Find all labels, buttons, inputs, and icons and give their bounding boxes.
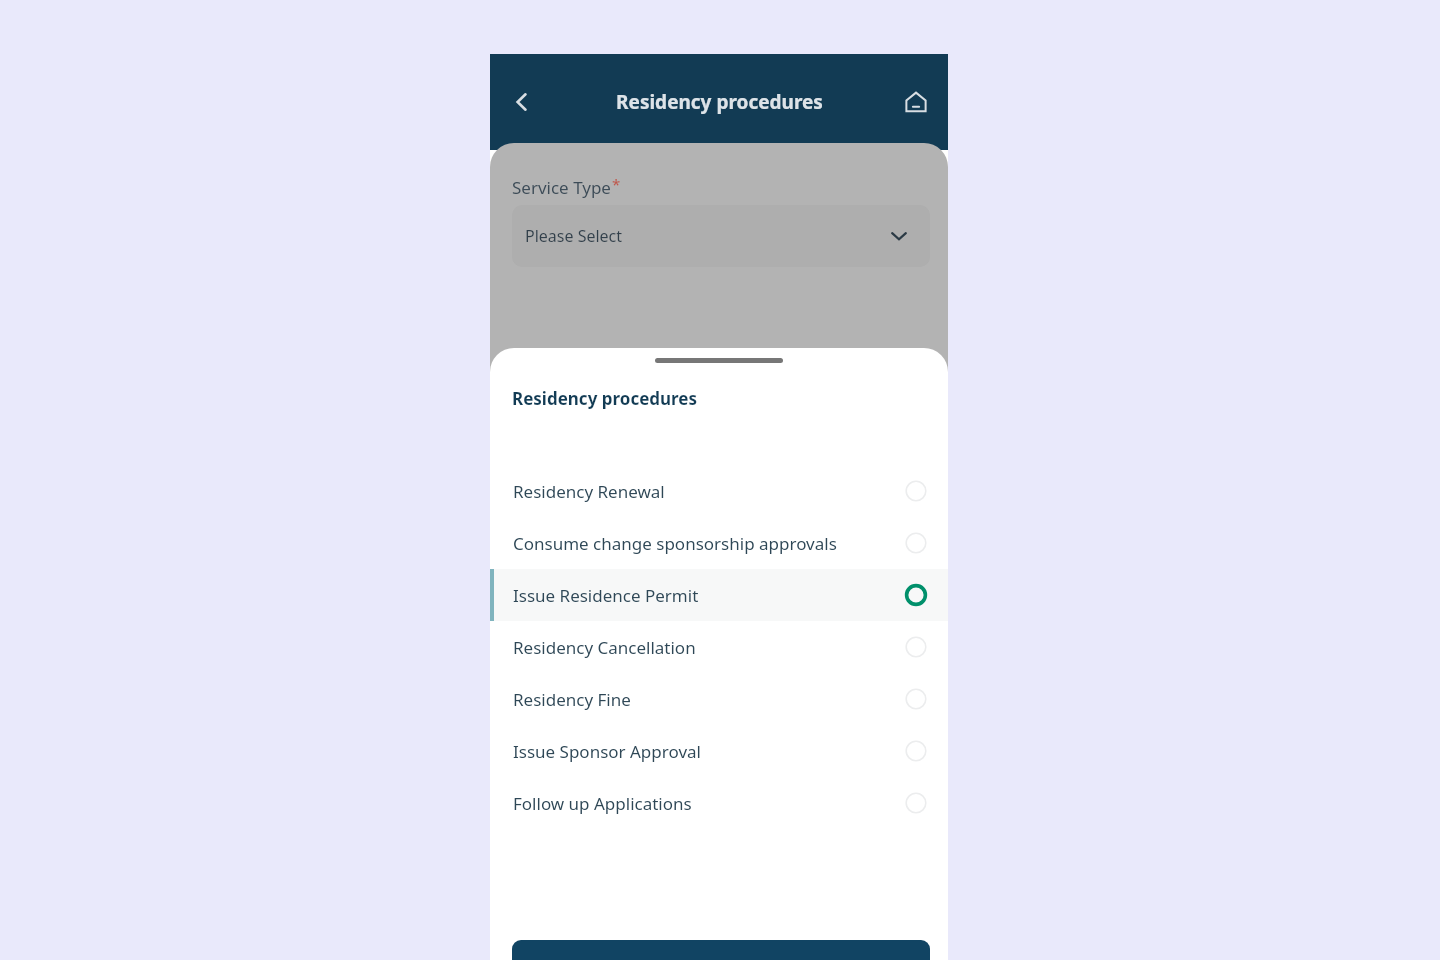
staticText: Service Type — [512, 176, 611, 199]
staticText: Follow up Applications — [513, 792, 884, 815]
staticText: Residency Cancellation — [513, 636, 884, 659]
button[interactable]: Issue Sponsor Approval — [490, 725, 948, 777]
staticText: Residency procedures — [512, 387, 698, 410]
staticText: Issue Sponsor Approval — [513, 740, 884, 763]
button[interactable]: Please Select — [512, 205, 930, 267]
button[interactable]: Home — [894, 80, 938, 124]
staticText: Issue Residence Permit — [513, 584, 884, 607]
staticText: * — [612, 174, 621, 194]
staticText: Residency procedures — [616, 89, 823, 115]
staticText: Residency Renewal — [513, 480, 884, 503]
button[interactable]: Follow up Applications — [490, 777, 948, 829]
button[interactable]: Residency Cancellation — [490, 621, 948, 673]
button[interactable]: Consume change sponsorship approvals — [490, 517, 948, 569]
button[interactable]: Residency Fine — [490, 673, 948, 725]
staticText: Consume change sponsorship approvals — [513, 532, 884, 555]
button[interactable]: Continue — [512, 940, 930, 960]
button[interactable]: Back — [500, 80, 544, 124]
button[interactable]: Residency Renewal — [490, 465, 948, 517]
staticText: Residency Fine — [513, 688, 884, 711]
button[interactable]: Issue Residence Permit — [490, 569, 948, 621]
staticText: Please Select — [525, 225, 623, 247]
